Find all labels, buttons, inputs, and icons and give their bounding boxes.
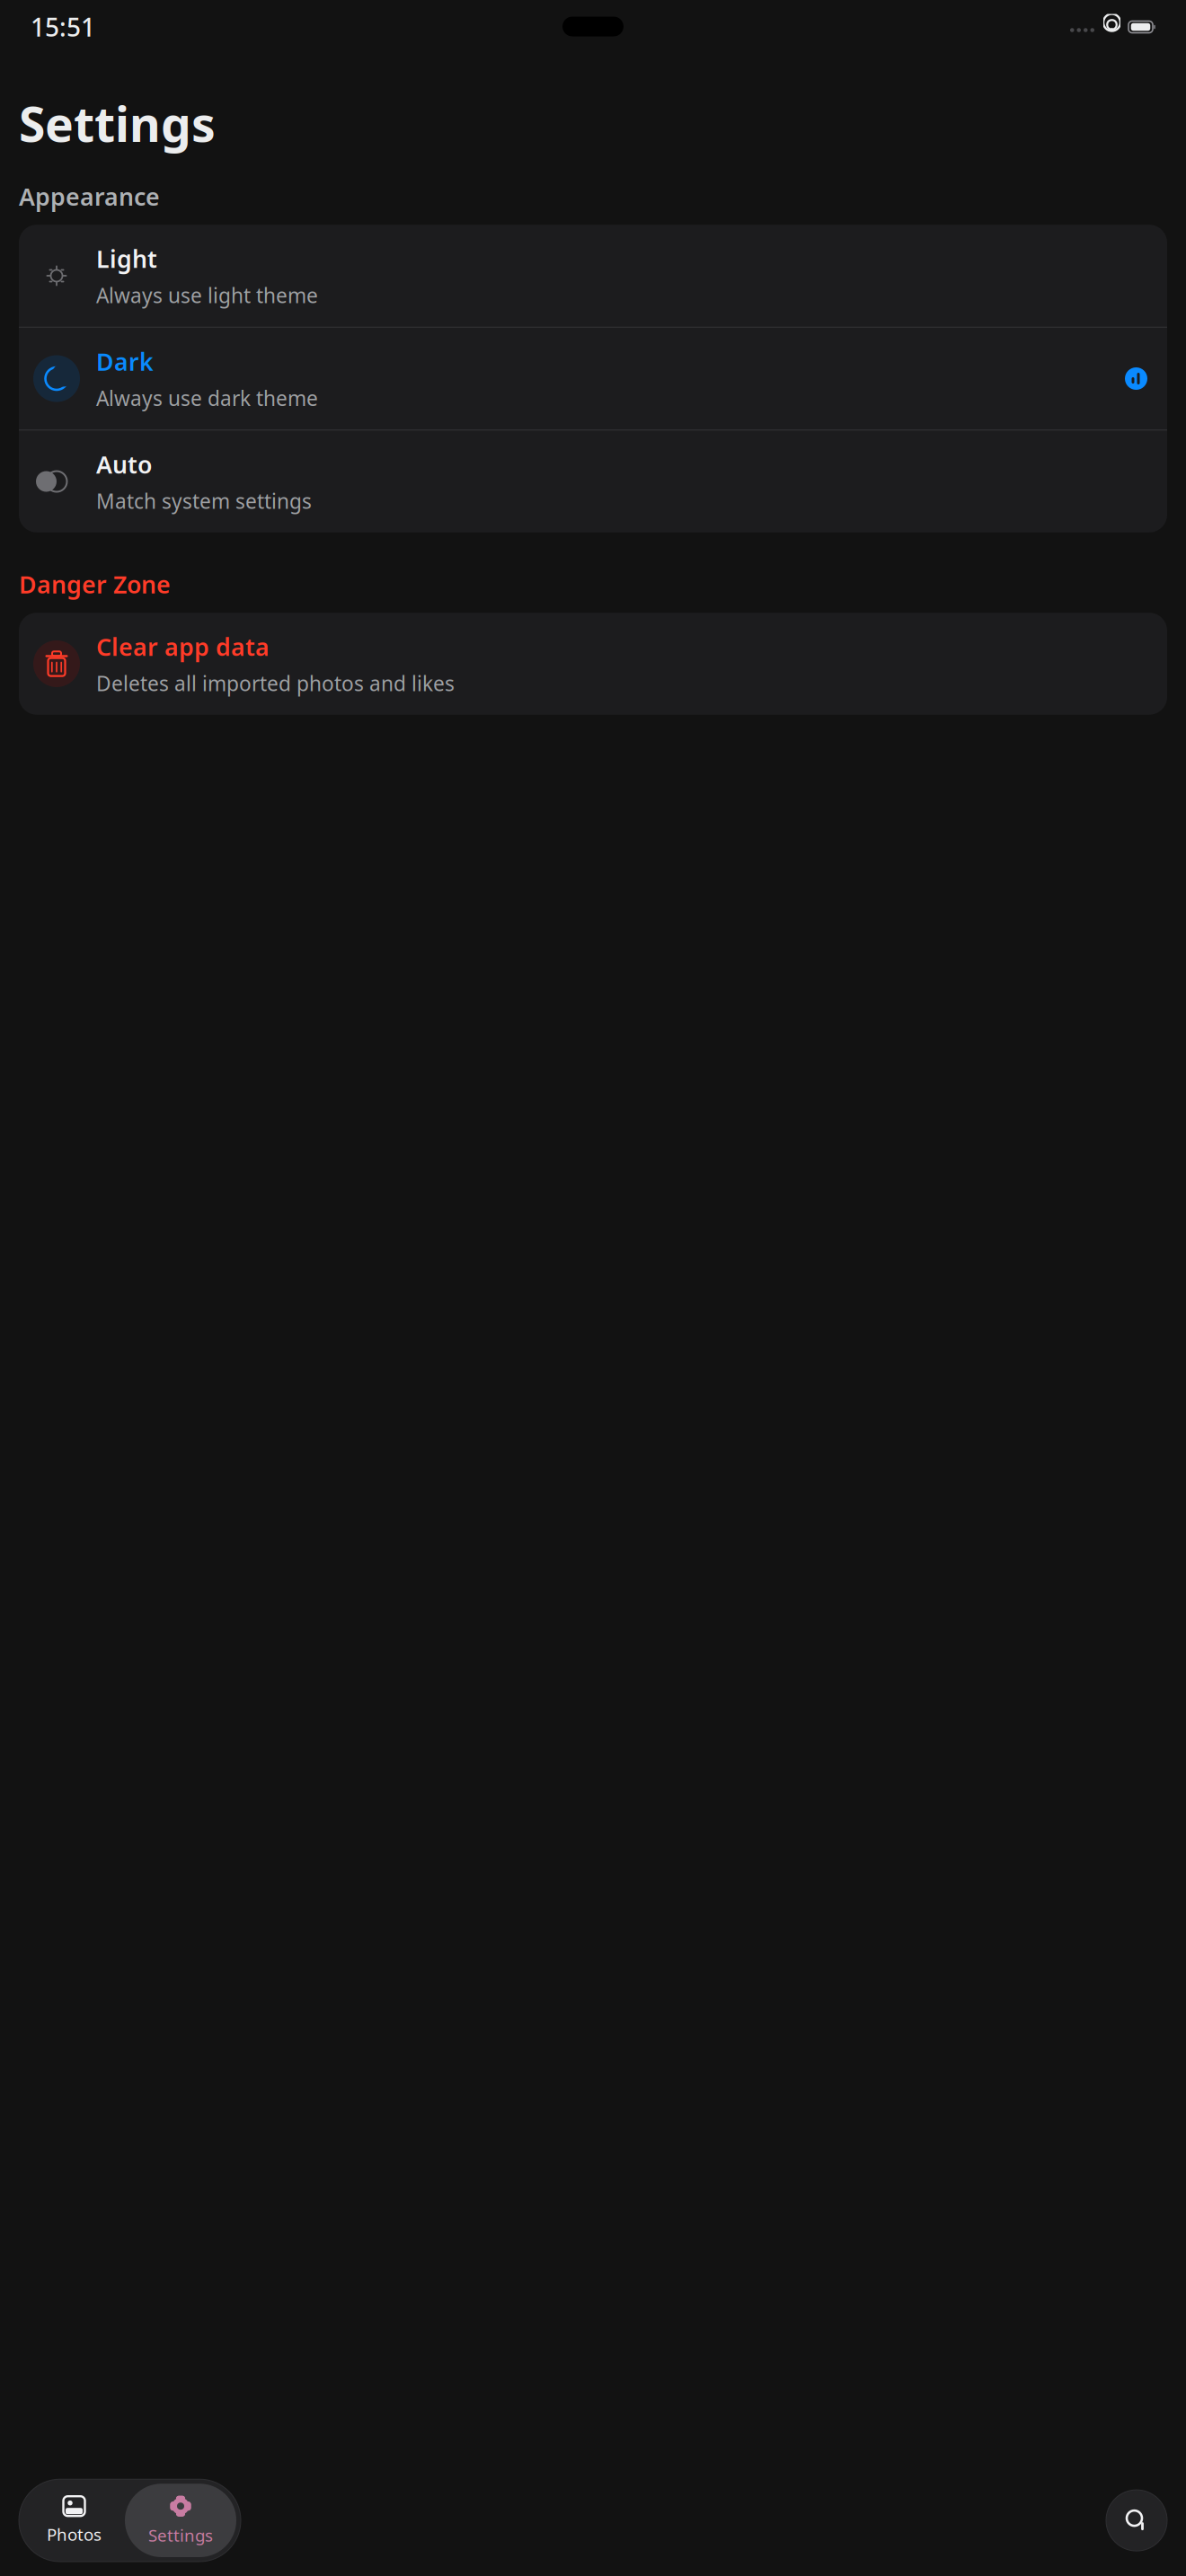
button[interactable]: Auto <box>19 431 1167 532</box>
staticText: Light <box>96 243 157 274</box>
button[interactable]: Settings <box>125 2484 236 2557</box>
staticText: Appearance <box>19 180 160 212</box>
button[interactable]: Dark <box>19 328 1167 430</box>
button[interactable]: Photos <box>23 2485 125 2556</box>
staticText: Settings <box>19 92 216 155</box>
staticText: Dark <box>96 346 154 377</box>
staticText: Settings <box>148 2524 213 2546</box>
staticText: Match system settings <box>96 487 312 514</box>
staticText: Danger Zone <box>19 568 171 600</box>
staticText: 15:51 <box>31 10 95 44</box>
button[interactable]: Clear app data <box>19 613 1167 715</box>
staticText: Always use light theme <box>96 282 318 309</box>
staticText: Auto <box>96 448 152 480</box>
staticText: Photos <box>47 2523 102 2545</box>
staticText: Clear app data <box>96 631 270 663</box>
staticText: Always use dark theme <box>96 385 318 412</box>
staticText: Deletes all imported photos and likes <box>96 670 455 697</box>
button[interactable]: Light <box>19 225 1167 327</box>
button[interactable]: Search <box>1106 2490 1167 2551</box>
